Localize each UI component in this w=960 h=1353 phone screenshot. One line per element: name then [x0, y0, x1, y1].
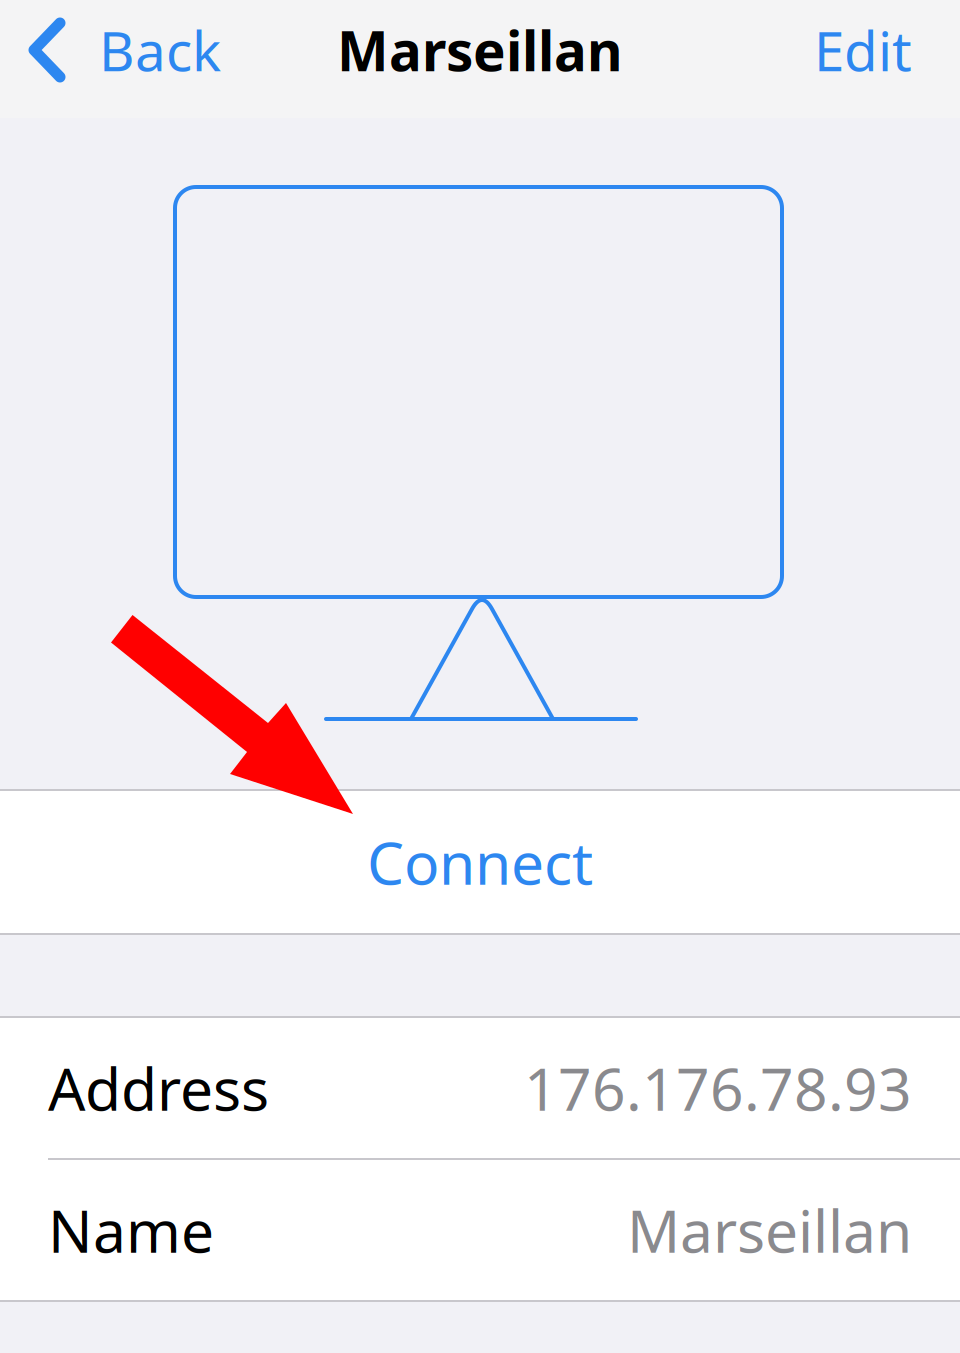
staticText: Edit	[814, 14, 912, 86]
staticText: 176.176.78.93	[524, 1049, 912, 1127]
button[interactable]: Connect	[0, 791, 960, 933]
staticText: Marseillan	[627, 1191, 912, 1269]
button[interactable]: Edit	[784, 0, 960, 118]
button[interactable]: Name	[0, 1160, 960, 1300]
staticText: Connect	[367, 823, 593, 901]
button[interactable]: Back	[0, 0, 235, 118]
staticText: Name	[48, 1191, 214, 1269]
staticText: Marseillan	[337, 14, 623, 86]
staticText: Back	[99, 14, 221, 86]
staticText: Address	[48, 1049, 269, 1127]
button[interactable]: Address	[0, 1018, 960, 1158]
